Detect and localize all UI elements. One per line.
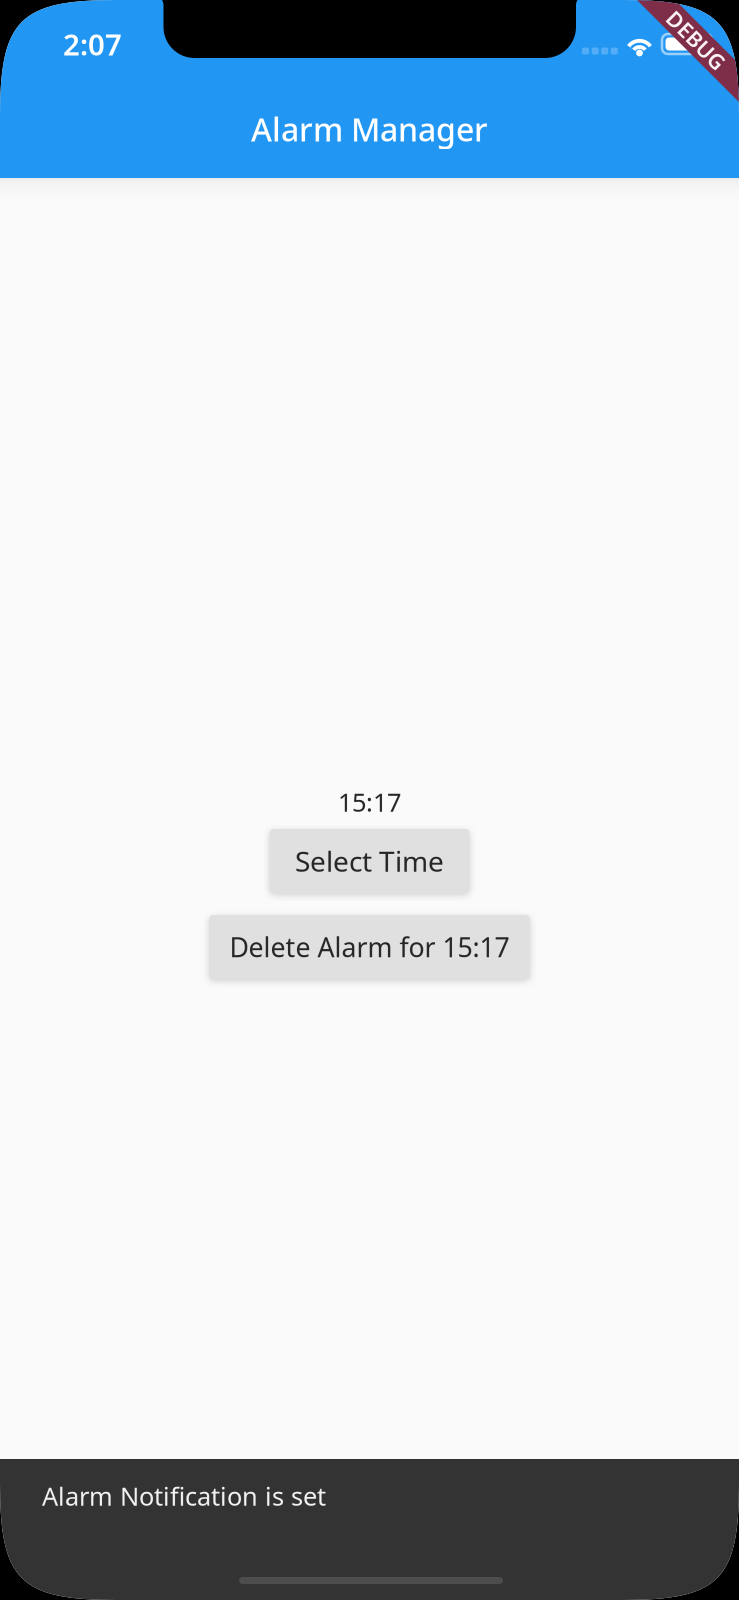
staticText: DEBUG (659, 26, 732, 54)
button[interactable]: Delete Alarm for 15:17 (209, 915, 530, 979)
button[interactable]: Select Time (269, 829, 469, 893)
staticText: Select Time (295, 842, 444, 880)
staticText: Delete Alarm for 15:17 (229, 929, 509, 965)
staticText: Alarm Notification is set (42, 1479, 326, 1513)
staticText: Alarm Manager (251, 108, 488, 150)
staticText: 15:17 (338, 785, 401, 819)
staticText: 2:07 (63, 24, 122, 63)
